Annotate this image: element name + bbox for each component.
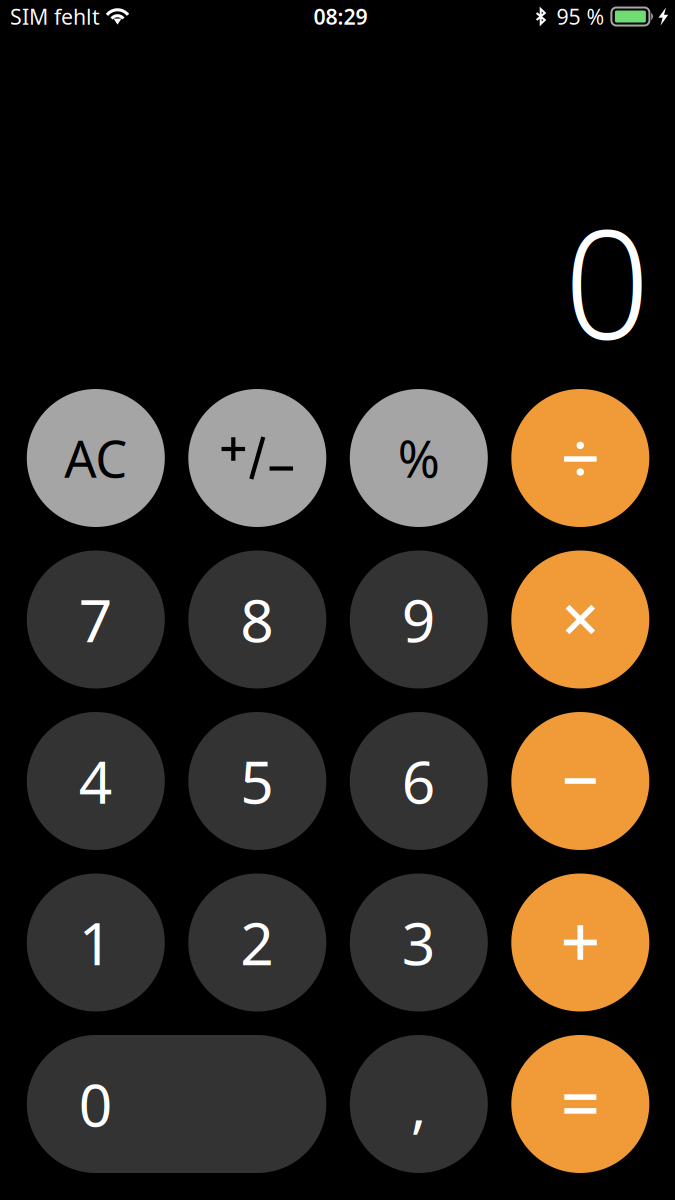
staticText: 9 bbox=[402, 580, 436, 658]
staticText: % bbox=[398, 424, 440, 492]
button[interactable]: 7 bbox=[27, 550, 165, 688]
button[interactable]: 5 bbox=[188, 712, 326, 850]
staticText: SIM fehlt bbox=[10, 2, 100, 31]
staticText: 3 bbox=[402, 903, 436, 981]
button[interactable]: 3 bbox=[350, 873, 488, 1011]
button[interactable]: Plus bbox=[511, 873, 649, 1011]
button[interactable]: 9 bbox=[350, 550, 488, 688]
button[interactable]: Divide bbox=[511, 389, 649, 527]
staticText: AC bbox=[64, 424, 127, 492]
button[interactable]: Minus bbox=[511, 712, 649, 850]
staticText: 1 bbox=[79, 903, 113, 981]
staticText: , bbox=[411, 1065, 427, 1143]
button[interactable]: 8 bbox=[188, 550, 326, 688]
button[interactable]: Multiply bbox=[511, 550, 649, 688]
staticText: 5 bbox=[240, 742, 274, 820]
button[interactable]: 2 bbox=[188, 873, 326, 1011]
button[interactable]: 0 bbox=[27, 1035, 326, 1173]
staticText: 0 bbox=[79, 1065, 113, 1143]
button[interactable]: Plus or minus bbox=[188, 389, 326, 527]
button[interactable]: AC bbox=[27, 389, 165, 527]
button[interactable]: 1 bbox=[27, 873, 165, 1011]
staticText: 6 bbox=[402, 742, 436, 820]
button[interactable]: 4 bbox=[27, 712, 165, 850]
staticText: 95 % bbox=[556, 2, 604, 31]
staticText: 4 bbox=[79, 742, 113, 820]
button[interactable]: , bbox=[350, 1035, 488, 1173]
staticText: 7 bbox=[79, 580, 113, 658]
staticText: 08:29 bbox=[313, 2, 367, 31]
staticText: 8 bbox=[240, 580, 274, 658]
button[interactable]: % bbox=[350, 389, 488, 527]
button[interactable]: 6 bbox=[350, 712, 488, 850]
staticText: 0 bbox=[564, 180, 650, 380]
staticText: 2 bbox=[240, 903, 274, 981]
button[interactable]: Equals bbox=[511, 1035, 649, 1173]
